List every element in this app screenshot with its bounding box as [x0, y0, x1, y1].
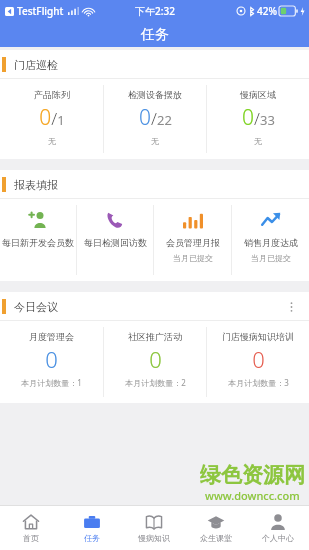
staticText: 个人中心: [262, 533, 294, 543]
button[interactable]: 慢病区域: [207, 79, 309, 159]
staticText: 产品陈列: [34, 89, 70, 100]
staticText: 慢病区域: [240, 89, 276, 100]
staticText: 42%: [257, 4, 277, 18]
staticText: 本月计划数量：2: [125, 377, 186, 388]
button[interactable]: 众生课堂: [185, 506, 247, 550]
staticText: 任务: [141, 26, 169, 44]
staticText: 月度管理会: [29, 331, 74, 342]
staticText: 当月已提交: [251, 253, 291, 263]
button[interactable]: 任务: [61, 506, 123, 550]
button[interactable]: 门店慢病知识培训: [207, 321, 309, 403]
staticText: 每日检测回访数: [84, 237, 147, 248]
staticText: 每日新开发会员数: [2, 237, 74, 248]
button[interactable]: 月度管理会: [0, 321, 103, 403]
staticText: 0: [45, 344, 58, 374]
staticText: 首页: [23, 533, 39, 543]
staticText: 销售月度达成: [244, 237, 298, 248]
button[interactable]: 每日新开发会员数: [0, 199, 76, 281]
button[interactable]: 每日检测回访数: [77, 199, 153, 281]
button[interactable]: 社区推广活动: [104, 321, 206, 403]
staticText: 当月已提交: [173, 253, 213, 263]
staticText: 门店巡检: [14, 58, 58, 72]
staticText: 今日会议: [14, 300, 58, 314]
staticText: TestFlight: [17, 4, 64, 18]
button[interactable]: 首页: [0, 506, 61, 550]
button[interactable]: 产品陈列: [0, 79, 103, 159]
button[interactable]: 销售月度达成: [232, 199, 309, 281]
staticText: 无: [151, 136, 159, 146]
staticText: 慢病知识: [138, 533, 170, 543]
button[interactable]: 会员管理月报: [154, 199, 231, 281]
staticText: 会员管理月报: [166, 237, 220, 248]
button[interactable]: 慢病知识: [123, 506, 185, 550]
staticText: 本月计划数量：1: [21, 377, 82, 388]
staticText: 0/22: [139, 103, 172, 132]
staticText: 检测设备摆放: [128, 89, 182, 100]
staticText: 下午2:32: [135, 4, 175, 18]
staticText: 无: [48, 136, 56, 146]
staticText: 报表填报: [14, 178, 58, 192]
staticText: 0: [149, 344, 162, 374]
staticText: 绿色资源网: [200, 462, 305, 488]
staticText: 任务: [84, 533, 100, 543]
button[interactable]: 检测设备摆放: [104, 79, 206, 159]
staticText: www.downcc.com: [205, 488, 300, 503]
staticText: 门店慢病知识培训: [222, 331, 294, 342]
button[interactable]: 个人中心: [247, 506, 309, 550]
staticText: 本月计划数量：3: [228, 377, 289, 388]
staticText: 无: [254, 136, 262, 146]
staticText: 0/1: [39, 103, 65, 132]
staticText: 社区推广活动: [128, 331, 182, 342]
staticText: 0: [252, 344, 265, 374]
staticText: 众生课堂: [200, 533, 232, 543]
staticText: 0/33: [242, 103, 275, 132]
button[interactable]: More options: [281, 297, 301, 317]
